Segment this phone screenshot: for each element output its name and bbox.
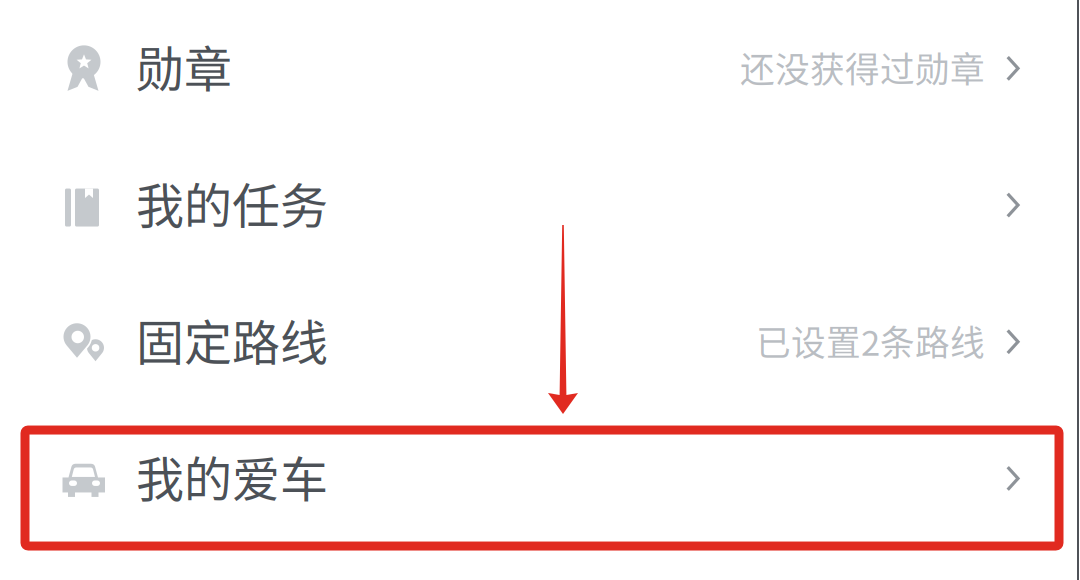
staticText: 还没获得过勋章 [740, 42, 985, 92]
button[interactable]: 我的任务 [0, 134, 1080, 271]
staticText: 勋章 [136, 31, 232, 101]
button[interactable]: 固定路线, 已设置2条路线 [0, 271, 1080, 408]
staticText: 已设置2条路线 [756, 316, 985, 366]
staticText: 我的爱车 [136, 441, 328, 511]
button[interactable]: 我的爱车 [0, 408, 1080, 544]
staticText: 我的任务 [136, 168, 328, 237]
button[interactable]: 勋章, 还没获得过勋章 [0, 0, 1080, 134]
staticText: 固定路线 [136, 304, 328, 374]
